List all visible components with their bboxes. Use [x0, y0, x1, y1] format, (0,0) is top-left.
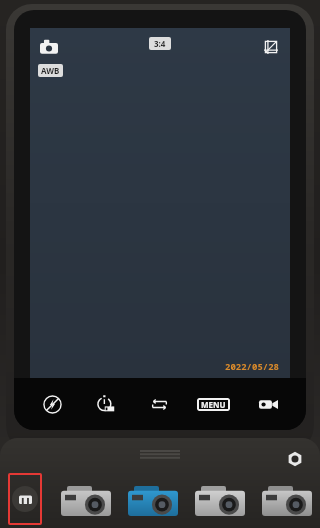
- staticText: 2022/05/28: [225, 360, 280, 372]
- button[interactable]: Settings: [286, 450, 304, 468]
- staticText: 3:4: [154, 38, 166, 49]
- button[interactable]: Self timer off: [90, 389, 120, 419]
- button[interactable]: Switch camera: [144, 389, 174, 419]
- staticText: AWB: [41, 65, 60, 76]
- button[interactable]: MENU: [197, 398, 230, 411]
- button[interactable]: Flash off: [37, 389, 67, 419]
- staticText: MENU: [201, 399, 226, 410]
- button[interactable]: AWB: [38, 64, 63, 77]
- button[interactable]: [52, 473, 119, 525]
- button[interactable]: [186, 473, 253, 525]
- button[interactable]: [253, 473, 320, 525]
- button[interactable]: Crop: [260, 36, 282, 58]
- button[interactable]: [8, 473, 42, 525]
- button[interactable]: Photo mode: [38, 36, 60, 58]
- button[interactable]: Video mode: [253, 389, 283, 419]
- button[interactable]: 3:4: [149, 37, 171, 50]
- button[interactable]: [119, 473, 186, 525]
